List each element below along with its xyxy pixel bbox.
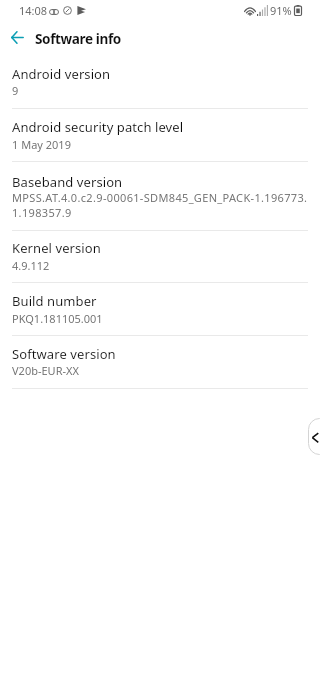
staticText: 14:08 (19, 3, 48, 18)
staticText: 9 (12, 83, 312, 98)
button[interactable]: Build number (0, 283, 320, 335)
button[interactable]: Open side panel (308, 418, 320, 455)
button[interactable]: Software version (0, 336, 320, 388)
staticText: PKQ1.181105.001 (12, 311, 312, 326)
button[interactable]: Android version (0, 56, 320, 108)
staticText: Software version (12, 345, 116, 363)
staticText: MPSS.AT.4.0.c2.9-00061-SDM845_GEN_PACK-1… (12, 190, 312, 220)
staticText: 91% (270, 3, 292, 18)
staticText: Android version (12, 65, 111, 83)
staticText: Build number (12, 292, 97, 310)
staticText: Software info (35, 29, 121, 48)
button[interactable]: Baseband version (0, 163, 320, 230)
staticText: Baseband version (12, 173, 123, 191)
staticText: 4.9.112 (12, 258, 312, 273)
staticText: V20b-EUR-XX (12, 363, 312, 378)
button[interactable]: Kernel version (0, 230, 320, 282)
button[interactable]: Navigate up (4, 24, 31, 51)
staticText: Android security patch level (12, 118, 184, 136)
button[interactable]: Android security patch level (0, 109, 320, 161)
staticText: Kernel version (12, 239, 101, 257)
staticText: 1 May 2019 (12, 137, 312, 152)
